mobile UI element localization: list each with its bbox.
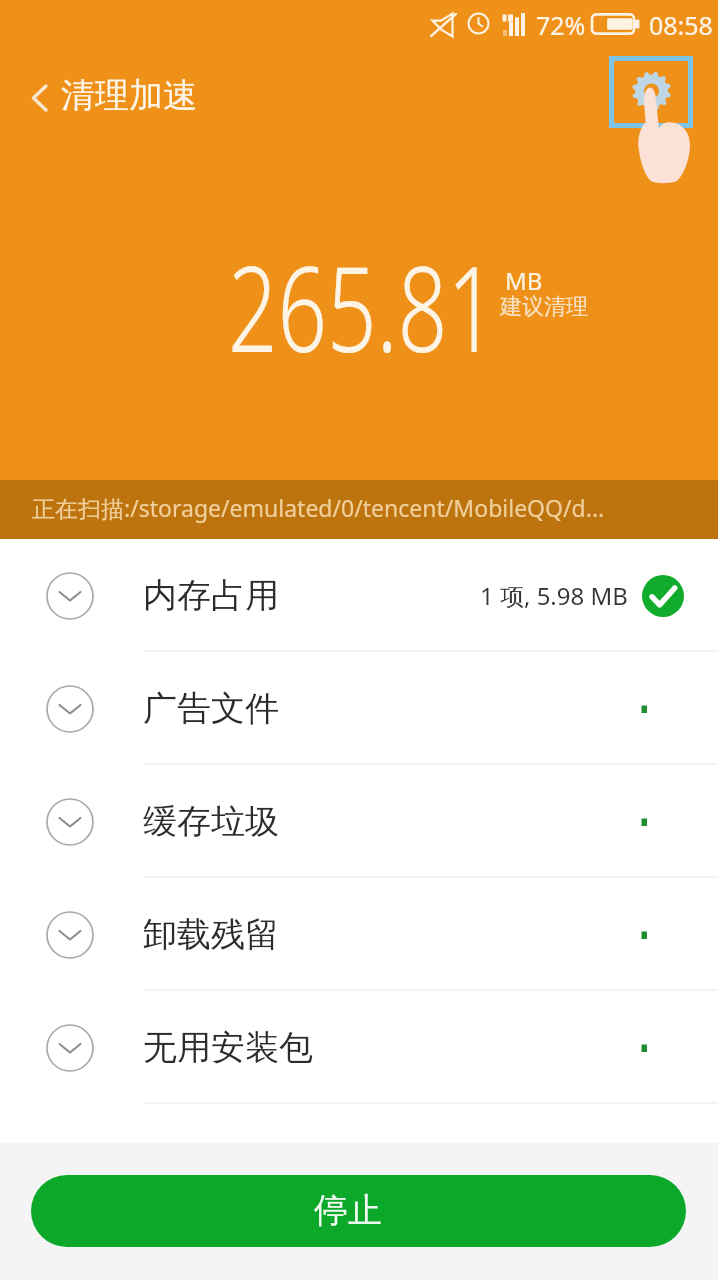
button[interactable]: Expand 内存占用: [46, 572, 94, 620]
button[interactable]: Expand 缓存垃圾: [0, 765, 718, 878]
staticText: 建议清理: [500, 293, 588, 321]
button[interactable]: Expand 广告文件: [46, 685, 94, 733]
button[interactable]: Expand 卸载残留: [46, 911, 94, 959]
staticText: 72%: [536, 8, 586, 42]
staticText: 卸载残留: [143, 913, 279, 956]
staticText: 缓存垃圾: [143, 800, 279, 843]
button[interactable]: Expand 无用安装包: [46, 1024, 94, 1072]
staticText: 广告文件: [143, 687, 279, 730]
staticText: 内存占用: [143, 574, 279, 617]
staticText: 265.81: [228, 226, 497, 387]
staticText: 清理加速: [61, 74, 197, 117]
button[interactable]: Expand 缓存垃圾: [46, 798, 94, 846]
button[interactable]: Settings: [609, 56, 693, 128]
staticText: 正在扫描:/storage/emulated/0/tencent/MobileQ…: [32, 492, 605, 523]
staticText: 无用安装包: [143, 1026, 313, 1069]
button[interactable]: Back: [8, 64, 72, 128]
button[interactable]: Expand 无用安装包: [0, 991, 718, 1104]
staticText: 08:58: [649, 8, 713, 42]
button[interactable]: 停止: [31, 1175, 686, 1247]
button[interactable]: Expand 内存占用: [0, 539, 718, 652]
button[interactable]: Expand 广告文件: [0, 652, 718, 765]
staticText: 停止: [314, 1189, 382, 1232]
staticText: 1 项, 5.98 MB: [480, 579, 628, 612]
button[interactable]: Expand 卸载残留: [0, 878, 718, 991]
staticText: MB: [505, 264, 543, 297]
